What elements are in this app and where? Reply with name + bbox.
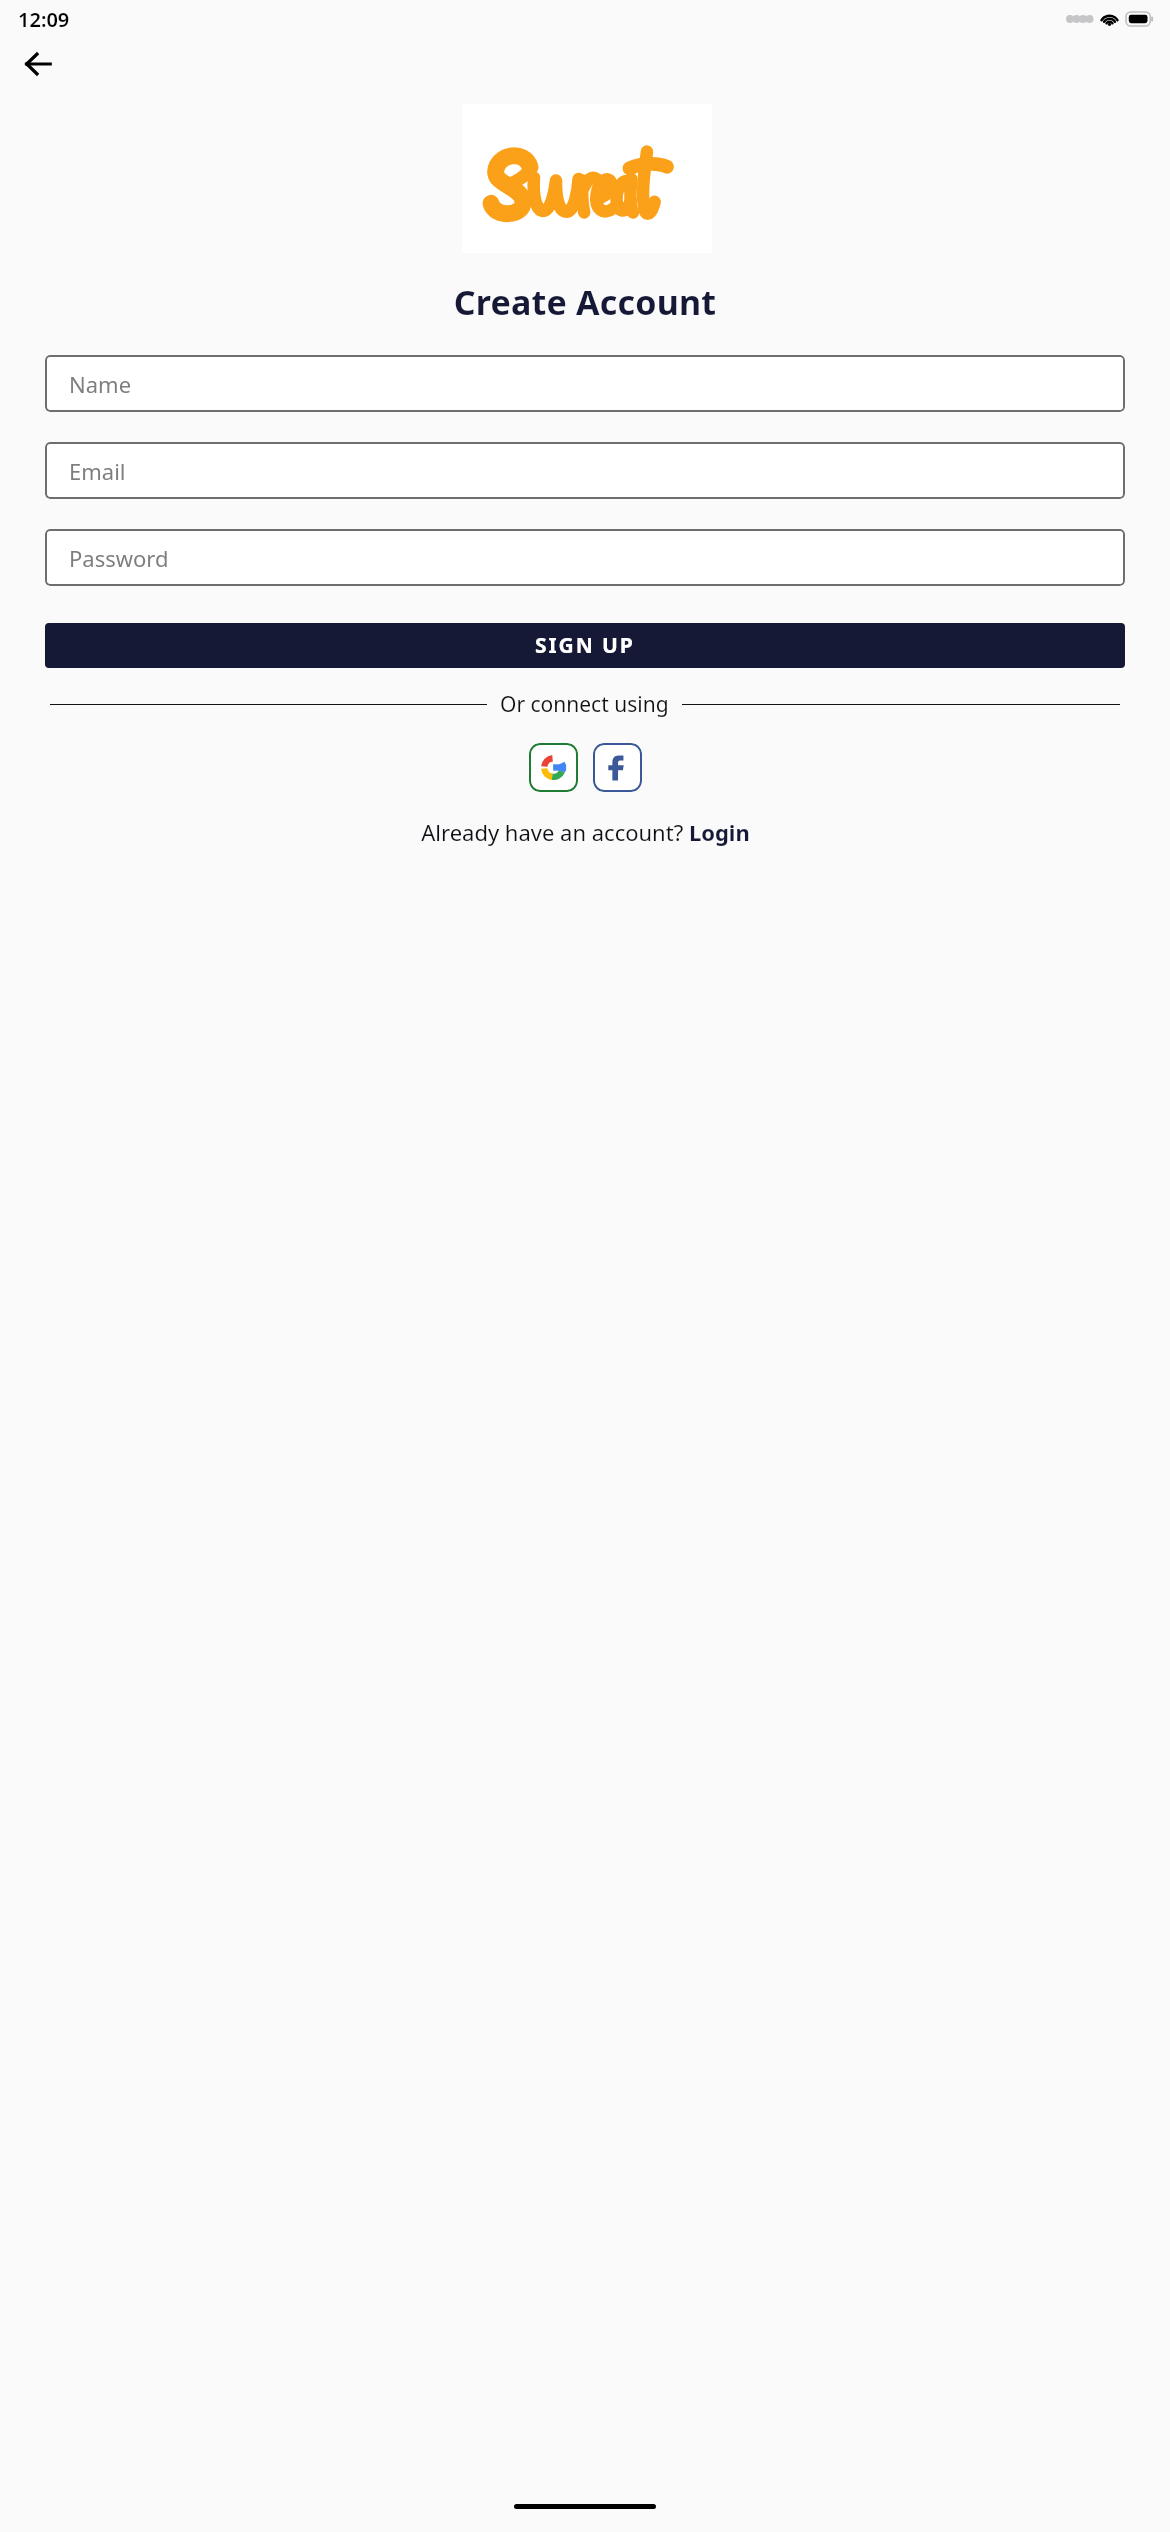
button[interactable]: Name bbox=[45, 355, 1125, 412]
staticText: 12:09 bbox=[18, 6, 70, 33]
button[interactable]: Password bbox=[45, 529, 1125, 586]
staticText: Email bbox=[69, 456, 126, 486]
button[interactable]: Sign in with Google bbox=[529, 743, 578, 792]
button[interactable]: Email bbox=[45, 442, 1125, 499]
button[interactable]: Already have an account? Login bbox=[421, 817, 750, 847]
staticText: Password bbox=[69, 543, 169, 573]
staticText: Create Account bbox=[0, 279, 1170, 325]
button[interactable]: Sign in with Facebook bbox=[593, 743, 642, 792]
staticText: Or connect using bbox=[500, 690, 669, 719]
button[interactable]: SIGN UP bbox=[45, 623, 1125, 668]
staticText: Name bbox=[69, 369, 132, 399]
staticText: SIGN UP bbox=[535, 631, 635, 660]
button[interactable]: Back bbox=[14, 40, 62, 88]
